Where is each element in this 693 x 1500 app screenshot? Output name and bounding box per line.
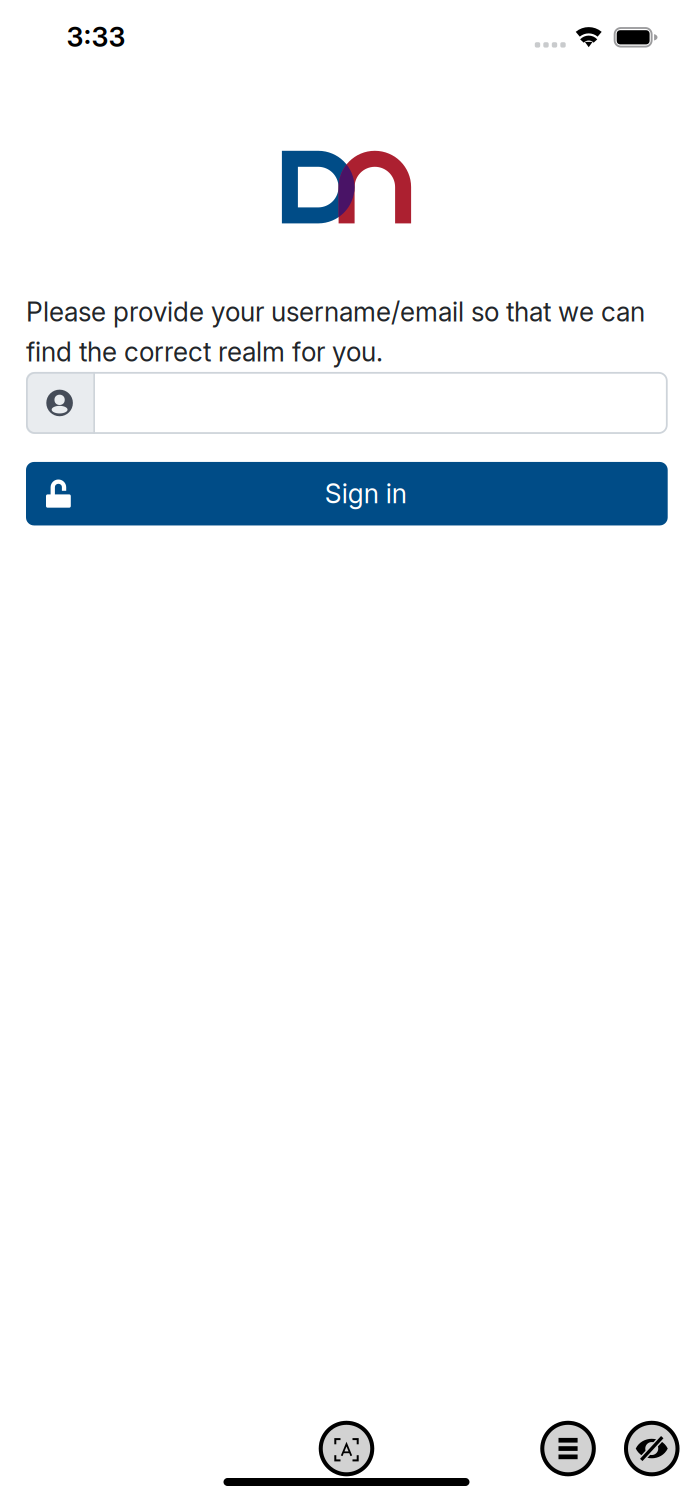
button[interactable]: Hide toolbar	[624, 1421, 679, 1476]
staticText: 3:33	[66, 21, 125, 53]
button[interactable]: Sign in	[26, 462, 668, 525]
button[interactable]: Username or email	[26, 372, 668, 434]
button[interactable]: Page zoom	[319, 1421, 374, 1476]
staticText: Please provide your username/email so th…	[26, 296, 645, 368]
staticText: Sign in	[325, 478, 407, 510]
button[interactable]: Menu	[540, 1421, 596, 1476]
